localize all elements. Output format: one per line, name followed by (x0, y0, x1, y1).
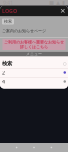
staticText: 検索 (4, 19, 12, 24)
button[interactable]: 2 (0, 68, 68, 77)
staticText: ご利用のお客様へ重要なお知らせ (4, 40, 64, 44)
staticText: LOGO (2, 7, 17, 15)
staticText: 4 (2, 78, 5, 85)
button[interactable]: 4 (0, 77, 68, 86)
staticText: メニュー (26, 51, 42, 56)
staticText: ○ (63, 61, 66, 66)
staticText: 9:41 (3, 0, 13, 6)
button[interactable]: Close (60, 7, 66, 15)
staticText: ご案内のお知らせページ (2, 28, 46, 33)
staticText: 詳しくはこちら (20, 44, 48, 49)
staticText: 検索 (2, 60, 12, 67)
staticText: ■ ▲ ▮ (49, 0, 65, 6)
staticText: 2 (2, 69, 5, 76)
staticText: ✕ (60, 7, 66, 15)
button[interactable]: 検索 (2, 18, 14, 24)
